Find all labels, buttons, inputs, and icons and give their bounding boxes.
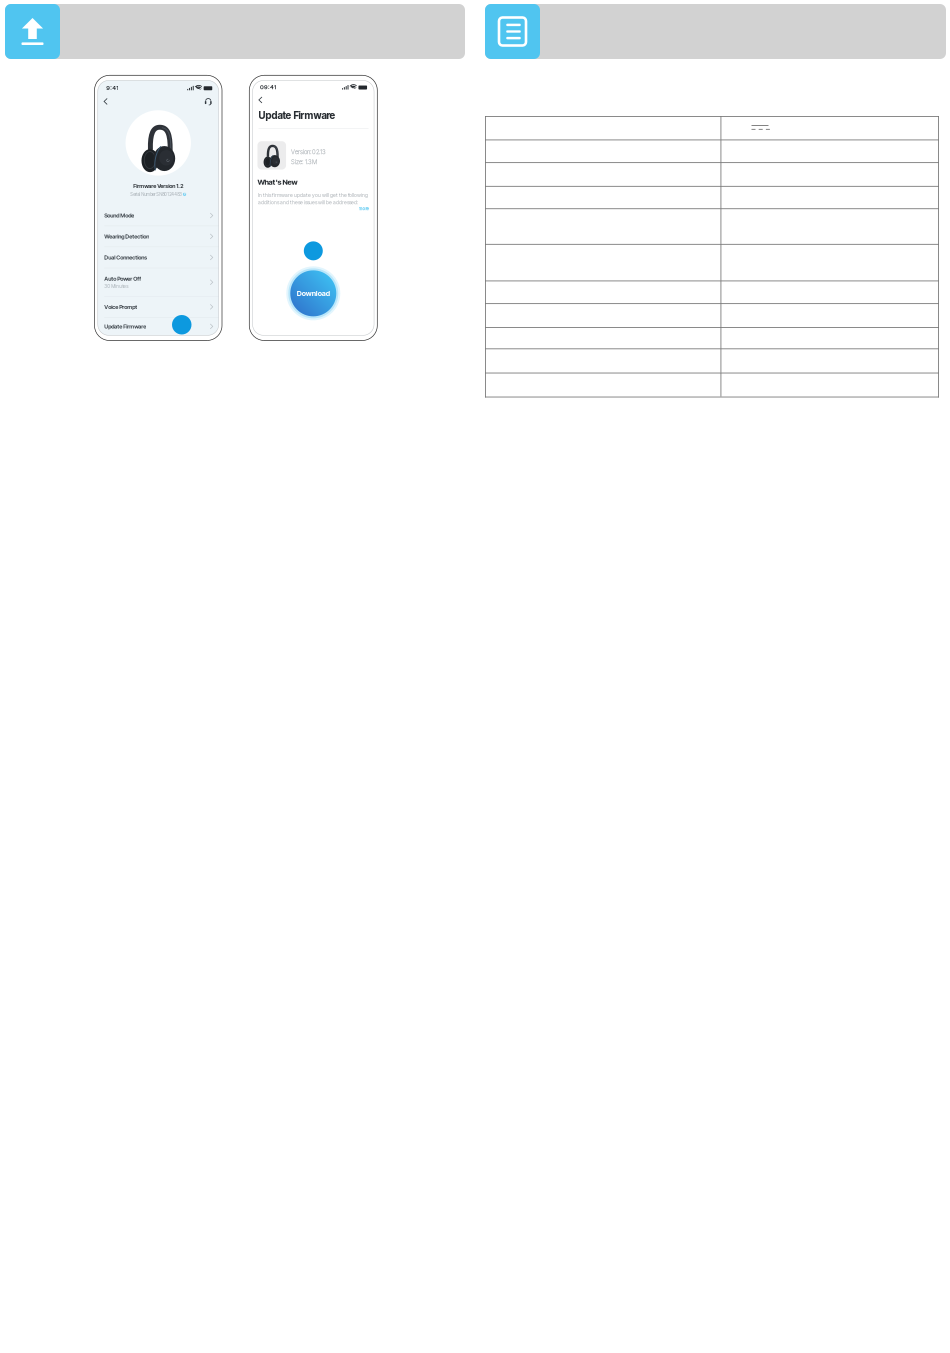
button[interactable]: Auto Power Off [98,268,219,296]
button[interactable]: Sound Mode [98,205,219,226]
staticText: What's New [257,178,297,187]
button[interactable]: Back [259,94,270,106]
button[interactable]: Update Firmware [98,317,219,335]
button[interactable]: Section icon [5,4,60,59]
staticText: Update Firmware [104,323,146,330]
button[interactable]: Voice Prompt [98,297,219,317]
staticText: 09:41 [260,84,276,91]
staticText: Update Firmware [259,109,336,121]
staticText: Wearing Detection [104,233,149,240]
button[interactable]: Back [104,95,115,107]
button[interactable]: Download [286,266,340,320]
staticText: Firmware Version 1.2 [133,182,183,189]
staticText: Download [297,289,330,298]
staticText: 9:41 [106,84,118,91]
button[interactable]: Support [201,95,212,107]
staticText: In this firmware update you will get the… [258,192,368,205]
staticText: Auto Power Off [104,275,141,282]
button[interactable]: Dual Connections [98,247,219,268]
staticText: Size: 1.3M [291,158,317,166]
staticText: Voice Prompt [104,303,137,310]
staticText: Dual Connections [104,254,147,261]
button[interactable]: Copy serial number [183,192,186,196]
button[interactable]: Wearing Detection [98,226,219,247]
staticText: more [359,206,369,211]
staticText: 30 Minutes [104,283,128,289]
staticText: Serial Number SN80124483 [130,192,182,197]
staticText: Sound Mode [104,212,134,219]
button[interactable]: Section icon [485,4,540,59]
staticText: Version: 02.13 [291,148,326,156]
button[interactable]: more [359,206,369,211]
